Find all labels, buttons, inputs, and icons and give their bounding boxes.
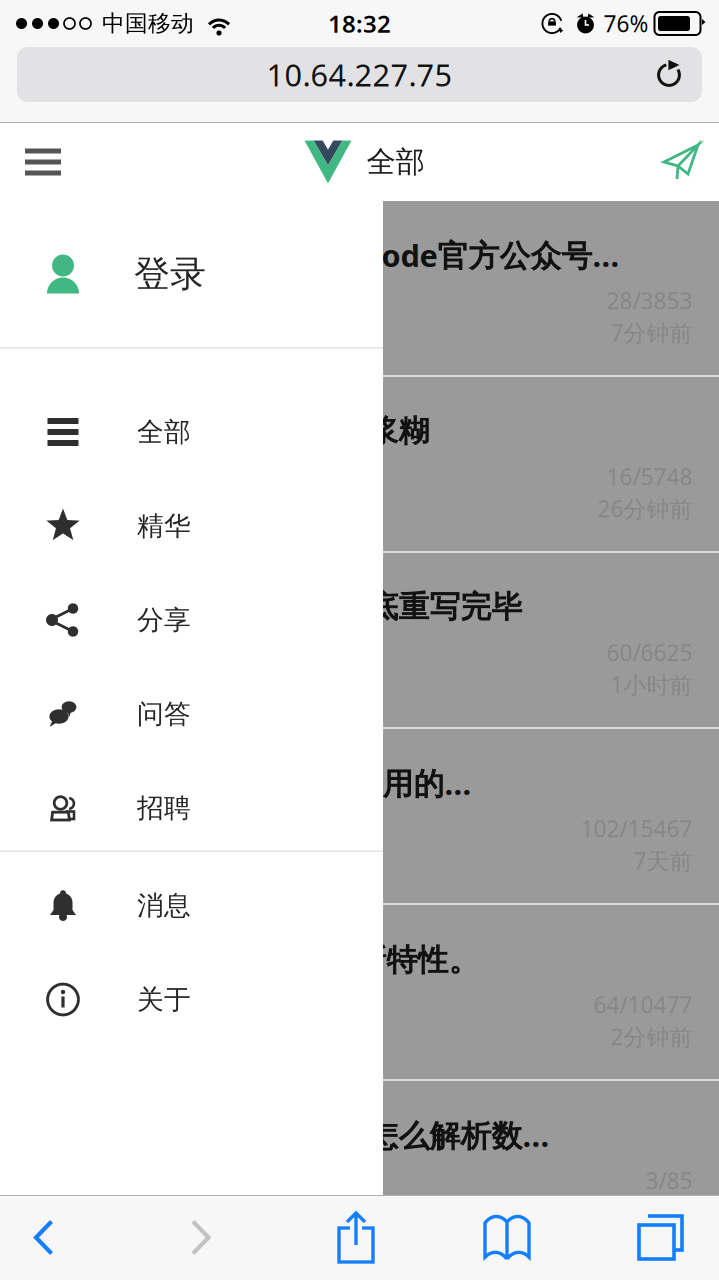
button[interactable]: 分享 — [0, 568, 383, 662]
button[interactable]: Back — [0, 1195, 88, 1280]
button[interactable]: Tabs — [616, 1195, 705, 1280]
button[interactable]: 关于 — [0, 948, 383, 1042]
button[interactable]: 登录 — [0, 201, 383, 347]
staticText: 招聘 — [137, 792, 191, 824]
staticText: 28/3853 — [606, 285, 692, 315]
button[interactable]: Bookmarks — [398, 1195, 616, 1280]
staticText: 消息 — [137, 889, 191, 922]
staticText: 中国移动 — [102, 10, 194, 37]
staticText: 社区客户端的前端部分彻底重写完毕 — [26, 588, 522, 626]
staticText: 2分钟前 — [610, 1021, 692, 1051]
staticText: 关于 — [137, 983, 191, 1016]
staticText: 7天前 — [633, 845, 692, 875]
button[interactable]: 招聘 — [0, 756, 383, 850]
button[interactable]: 消息 — [0, 854, 383, 948]
staticText: 18:32 — [328, 8, 391, 39]
button[interactable]: Send — [638, 123, 719, 201]
staticText: 分享一个用api做微信小应用的... — [26, 763, 471, 803]
staticText: 全部 — [366, 144, 424, 180]
staticText: 分享 — [137, 604, 191, 636]
staticText: 3/85 — [645, 1165, 692, 1195]
button[interactable]: 精华 — [0, 474, 383, 568]
button[interactable]: Share — [314, 1195, 398, 1280]
staticText: 102/15467 — [580, 813, 692, 843]
staticText: 请教在请求接口数据时，怎么解析数... — [26, 1115, 549, 1155]
staticText: 7分钟前 — [610, 317, 692, 347]
staticText: 76% — [603, 8, 648, 38]
button[interactable]: Menu — [0, 123, 86, 200]
staticText: 问答 — [137, 698, 191, 730]
staticText: 10.64.227.75 — [266, 54, 452, 95]
staticText: 精华 — [137, 510, 191, 542]
staticText: 16/5748 — [606, 461, 692, 491]
button[interactable]: 全部 — [0, 380, 383, 474]
button[interactable]: 问答 — [0, 662, 383, 756]
staticText: 64/10477 — [593, 989, 692, 1019]
staticText: 60/6625 — [606, 637, 692, 667]
staticText: 1小时前 — [610, 669, 692, 699]
staticText: 全部 — [137, 416, 191, 448]
button[interactable]: Forward — [88, 1195, 314, 1280]
staticText: 26分钟前 — [597, 493, 692, 523]
staticText: 登录 — [134, 252, 206, 296]
staticText: 求助：关于异步流程一团浆糊 — [26, 412, 429, 450]
button[interactable]: Reload — [656, 46, 702, 103]
staticText: 讨论一下Node新版本的新特性。 — [26, 939, 479, 979]
staticText: 各位朋友们好，这里是CNode官方公众号... — [26, 235, 619, 275]
